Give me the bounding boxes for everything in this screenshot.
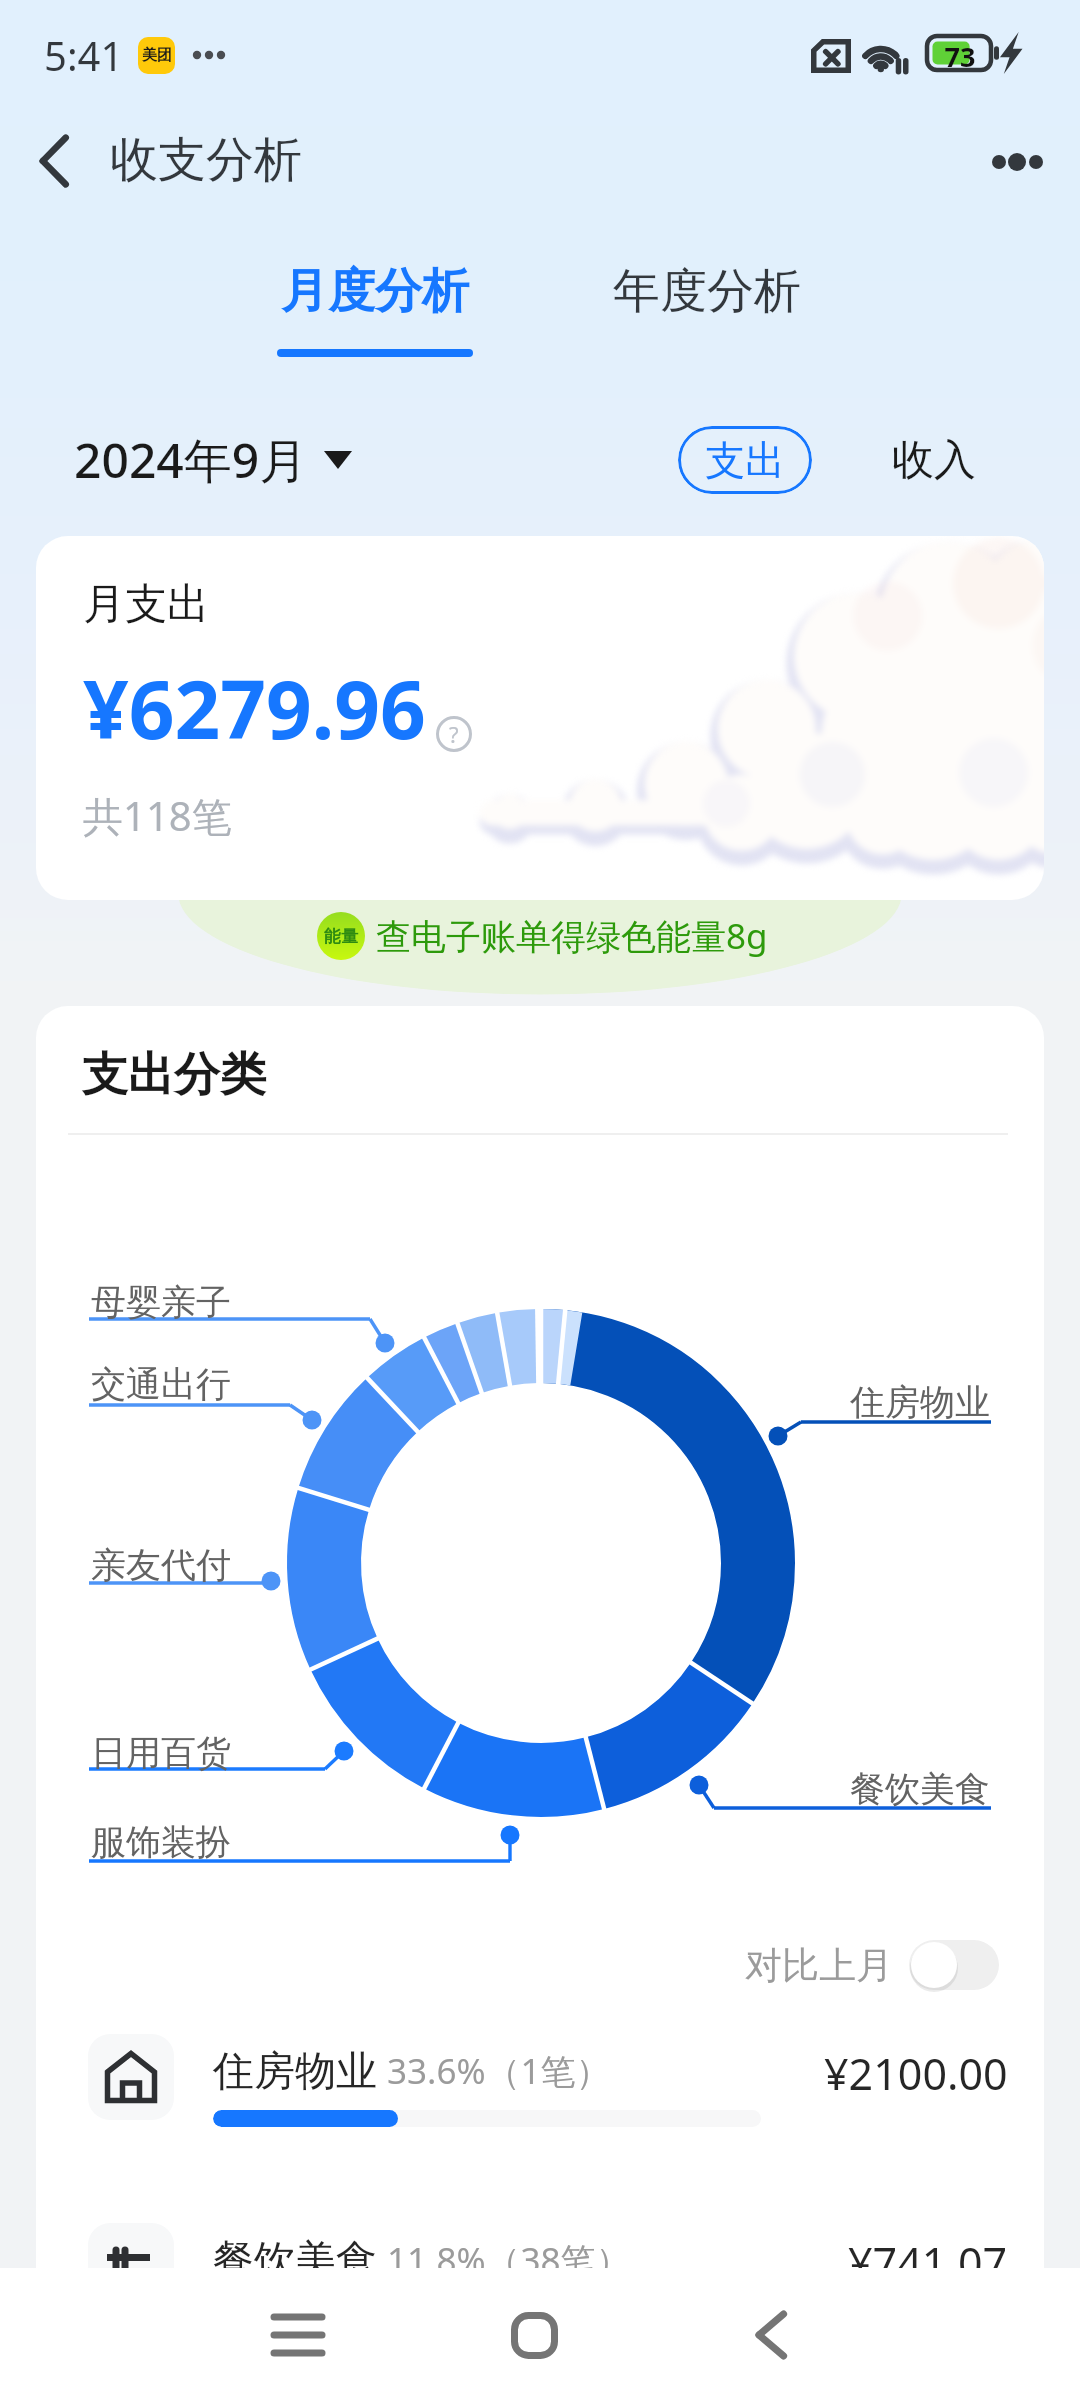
staticText: ? <box>449 719 459 749</box>
staticText: 收支分析 <box>110 130 302 190</box>
staticText: 月支出 <box>83 578 209 631</box>
staticText: 住房物业 <box>213 2046 377 2098</box>
button[interactable]: 住房物业 <box>36 2018 1044 2138</box>
staticText: 33.6%（1笔） <box>387 2047 611 2095</box>
button[interactable]: 收入 <box>880 424 988 497</box>
staticText: ¥6279.96 <box>83 653 426 762</box>
staticText: ¥2100.00 <box>824 2044 1008 2103</box>
staticText: 餐饮美食 <box>850 1767 990 1811</box>
staticText: 住房物业 <box>850 1380 990 1424</box>
staticText: 2024年9月 <box>74 427 308 493</box>
button[interactable]: 餐饮美食 <box>36 2207 1044 2268</box>
button[interactable]: 年度分析 <box>605 262 809 321</box>
button[interactable]: Compare with last month <box>909 1940 999 1990</box>
staticText: 服饰装扮 <box>91 1820 231 1864</box>
staticText: 餐饮美食 <box>213 2235 377 2268</box>
button[interactable]: 支出 <box>678 426 812 494</box>
staticText: 支出分类 <box>82 1046 266 1104</box>
staticText: 亲友代付 <box>91 1543 231 1587</box>
other: Back <box>40 135 68 187</box>
staticText: 11.8%（38笔） <box>387 2236 631 2268</box>
staticText: ¥741.07 <box>848 2233 1008 2268</box>
button[interactable]: 能量 <box>313 908 772 964</box>
staticText: 支出 <box>705 435 785 485</box>
button[interactable]: Home <box>474 2275 594 2395</box>
button[interactable]: 月支出 <box>36 536 1044 900</box>
staticText: 能量 <box>324 926 358 947</box>
button[interactable]: Recents <box>238 2275 358 2395</box>
button[interactable]: Back <box>20 125 322 205</box>
staticText: 日用百货 <box>91 1731 231 1775</box>
staticText: 母婴亲子 <box>91 1280 231 1324</box>
staticText: 年度分析 <box>613 262 801 321</box>
button[interactable]: Back <box>711 2275 831 2395</box>
staticText: 月度分析 <box>281 262 469 321</box>
staticText: 收入 <box>892 434 976 487</box>
staticText: 交通出行 <box>91 1362 231 1406</box>
button[interactable]: 2024年9月 <box>66 419 360 501</box>
staticText: 查电子账单得绿色能量8g <box>376 912 768 960</box>
staticText: 美团 <box>142 46 172 65</box>
staticText: 5:41 <box>44 28 124 82</box>
staticText: 共118笔 <box>83 788 232 843</box>
button[interactable]: More options <box>978 132 1062 192</box>
staticText: 对比上月 <box>745 1942 893 1989</box>
button[interactable]: 月度分析 <box>269 262 481 357</box>
staticText: 73 <box>937 38 983 75</box>
